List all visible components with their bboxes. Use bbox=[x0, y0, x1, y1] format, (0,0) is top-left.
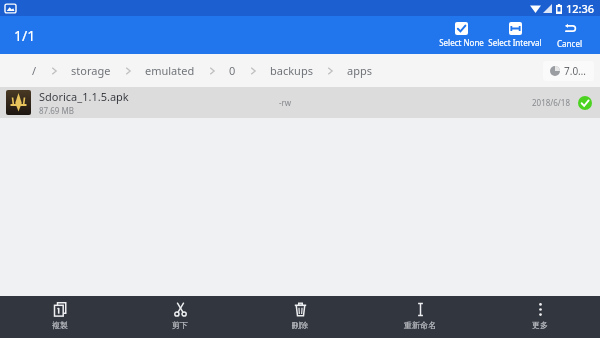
button[interactable]: Select Interval bbox=[488, 19, 542, 51]
staticText: 0 bbox=[229, 63, 236, 78]
staticText: -rw bbox=[225, 97, 345, 108]
staticText: 7.0… bbox=[564, 64, 587, 78]
button[interactable]: Sdorica_1.1.5.apk bbox=[0, 87, 600, 118]
button[interactable]: backups bbox=[264, 57, 319, 84]
staticText: Select None bbox=[439, 37, 484, 48]
staticText: 87.69 MB bbox=[39, 105, 74, 116]
button[interactable]: Delete bbox=[240, 296, 360, 338]
other: Selected bbox=[578, 96, 592, 110]
staticText: Sdorica_1.1.5.apk bbox=[39, 89, 129, 104]
staticText: 2018/6/18 bbox=[532, 97, 570, 108]
staticText: 刪除 bbox=[292, 320, 308, 330]
staticText: emulated bbox=[145, 63, 195, 78]
button[interactable]: apps bbox=[341, 57, 378, 84]
staticText: storage bbox=[71, 63, 111, 78]
button[interactable]: Cancel bbox=[542, 18, 596, 52]
staticText: Cancel bbox=[557, 38, 582, 49]
staticText: backups bbox=[270, 63, 313, 78]
staticText: Select Interval bbox=[488, 37, 542, 48]
button[interactable]: Cut bbox=[120, 296, 240, 338]
button[interactable]: / bbox=[26, 57, 43, 84]
staticText: 1/1 bbox=[14, 26, 36, 45]
staticText: 複製 bbox=[52, 320, 68, 330]
staticText: 12:36 bbox=[566, 1, 595, 16]
staticText: 更多 bbox=[532, 320, 548, 330]
button[interactable]: Rename bbox=[360, 296, 480, 338]
button[interactable]: 0 bbox=[223, 57, 242, 84]
staticText: / bbox=[32, 63, 37, 78]
staticText: 剪下 bbox=[172, 320, 188, 330]
button[interactable]: More bbox=[480, 296, 600, 338]
button[interactable]: storage bbox=[65, 57, 117, 84]
staticText: 重新命名 bbox=[404, 320, 436, 330]
button[interactable]: Select None bbox=[434, 19, 488, 51]
button[interactable]: 7.0… bbox=[543, 61, 594, 81]
staticText: apps bbox=[347, 63, 372, 78]
button[interactable]: emulated bbox=[139, 57, 201, 84]
button[interactable]: Copy bbox=[0, 296, 120, 338]
